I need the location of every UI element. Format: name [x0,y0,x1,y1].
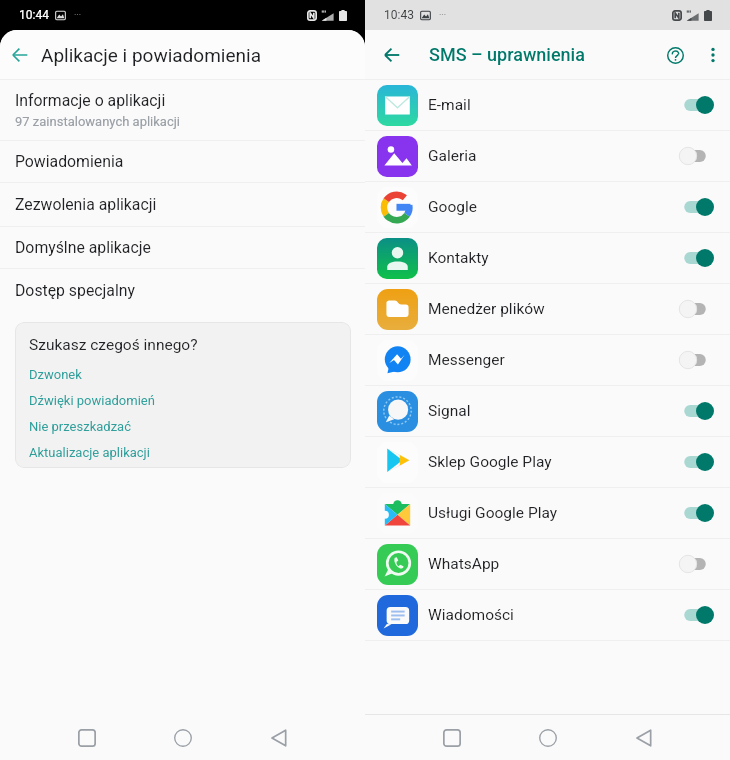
button[interactable]: Back [231,715,327,760]
staticText: Usługi Google Play [428,504,558,522]
button[interactable]: Kontakty [365,233,730,284]
button[interactable]: Dostęp specjalny [0,269,365,312]
staticText: Wiadomości [428,606,514,624]
button[interactable]: Informacje o aplikacji [0,80,365,141]
staticText: Szukasz czegoś innego? [29,336,198,354]
button[interactable]: Back [0,35,40,75]
button[interactable]: Recents [39,715,135,760]
button[interactable]: Aktualizacje aplikacji [29,445,150,460]
button[interactable]: Dźwięki powiadomień [29,393,155,408]
staticText: Powiadomienia [15,152,124,171]
staticText: Galeria [428,147,477,165]
staticText: ··· [439,10,447,21]
staticText: ··· [74,10,82,21]
staticText: E-mail [428,96,471,114]
staticText: Google [428,198,477,216]
button[interactable]: Back [372,35,412,75]
staticText: Menedżer plików [428,300,545,318]
button[interactable]: E-mail [365,80,730,131]
staticText: 97 zainstalowanych aplikacji [15,114,181,129]
button[interactable]: Powiadomienia [0,141,365,183]
button[interactable]: Back [596,715,692,760]
staticText: 10:44 [19,8,49,22]
button[interactable]: Galeria [365,131,730,182]
button[interactable]: Recents [404,715,500,760]
button[interactable]: Help [657,37,693,73]
button[interactable]: Usługi Google Play [365,488,730,539]
staticText: Nie przeszkadzać [29,419,131,434]
button[interactable]: Google [365,182,730,233]
staticText: 10:43 [384,8,414,22]
staticText: WhatsApp [428,555,500,573]
staticText: Sklep Google Play [428,453,552,471]
button[interactable]: More options [697,39,729,71]
staticText: Dostęp specjalny [15,281,135,300]
staticText: SMS – uprawnienia [429,44,585,65]
button[interactable]: Dzwonek [29,367,82,382]
staticText: Messenger [428,351,505,369]
button[interactable]: Zezwolenia aplikacji [0,183,365,227]
staticText: Aplikacje i powiadomienia [41,44,261,66]
staticText: Aktualizacje aplikacji [29,445,150,460]
staticText: Zezwolenia aplikacji [15,195,157,214]
button[interactable]: Menedżer plików [365,284,730,335]
button[interactable]: Home [500,715,596,760]
button[interactable]: Signal [365,386,730,437]
staticText: Informacje o aplikacji [15,91,166,110]
button[interactable]: Messenger [365,335,730,386]
staticText: Kontakty [428,249,489,267]
staticText: Dzwonek [29,367,82,382]
button[interactable]: Sklep Google Play [365,437,730,488]
button[interactable]: Home [135,715,231,760]
staticText: Dźwięki powiadomień [29,393,155,408]
button[interactable]: Wiadomości [365,590,730,641]
staticText: Domyślne aplikacje [15,238,151,257]
button[interactable]: Domyślne aplikacje [0,227,365,269]
button[interactable]: Nie przeszkadzać [29,419,131,434]
staticText: Signal [428,402,471,420]
button[interactable]: WhatsApp [365,539,730,590]
